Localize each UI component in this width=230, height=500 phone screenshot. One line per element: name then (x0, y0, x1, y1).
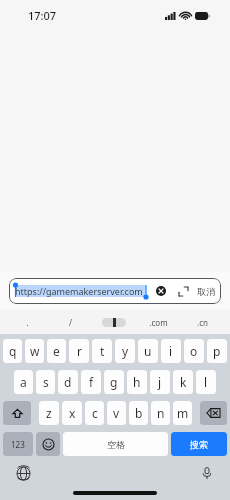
button[interactable]: p (207, 339, 227, 363)
button[interactable]: . (6, 310, 49, 334)
staticText: i (169, 343, 173, 359)
staticText: m (177, 405, 189, 421)
staticText: 空格 (107, 439, 125, 450)
staticText: u (144, 343, 152, 359)
button[interactable]: b (129, 401, 148, 425)
button[interactable]: r (69, 339, 89, 363)
button[interactable]: t (92, 339, 112, 363)
button[interactable]: m (173, 401, 192, 425)
staticText: d (64, 374, 72, 390)
staticText: n (157, 405, 165, 421)
staticText: y (122, 343, 129, 359)
staticText: q (9, 343, 17, 359)
staticText: .com (149, 317, 168, 328)
staticText: h (133, 374, 141, 390)
button[interactable]: k (173, 370, 193, 394)
staticText: f (89, 374, 94, 390)
staticText: 搜索 (190, 439, 208, 450)
staticText: g (110, 374, 118, 390)
staticText: a (20, 374, 27, 390)
button[interactable]: .com (136, 310, 180, 334)
button[interactable]: u (138, 339, 158, 363)
staticText: t (100, 343, 105, 359)
button[interactable]: Shift (3, 401, 31, 425)
staticText: c (92, 405, 98, 421)
staticText: https://gamemakerserver.com (15, 285, 143, 297)
button[interactable]: 123 (3, 432, 33, 456)
staticText: 17:07 (28, 8, 57, 23)
button[interactable]: 空格 (63, 432, 168, 456)
staticText: j (158, 374, 162, 390)
staticText: 取消 (197, 286, 215, 297)
button[interactable]: w (25, 339, 44, 363)
staticText: o (190, 343, 198, 359)
staticText: .cn (197, 317, 208, 328)
staticText: k (180, 374, 187, 390)
button[interactable]: Clear (153, 283, 169, 299)
button[interactable]: Expand (176, 284, 190, 298)
button[interactable]: Emoji (36, 432, 60, 456)
button[interactable]: v (107, 401, 126, 425)
button[interactable]: z (39, 401, 59, 425)
staticText: s (43, 374, 49, 390)
staticText: . (26, 317, 29, 328)
button[interactable]: Cursor control (92, 310, 136, 334)
button[interactable]: g (104, 370, 124, 394)
button[interactable]: a (14, 370, 33, 394)
button[interactable]: o (184, 339, 204, 363)
staticText: l (204, 374, 208, 390)
button[interactable]: e (47, 339, 66, 363)
button[interactable]: l (196, 370, 216, 394)
button[interactable]: n (151, 401, 170, 425)
staticText: z (46, 405, 52, 421)
button[interactable]: q (3, 339, 22, 363)
staticText: b (135, 405, 143, 421)
button[interactable]: y (115, 339, 135, 363)
button[interactable]: 搜索 (171, 432, 227, 456)
staticText: 123 (11, 439, 25, 450)
button[interactable]: 取消 (197, 286, 215, 297)
button[interactable]: https://gamemakerserver.com (9, 278, 221, 304)
staticText: x (69, 405, 76, 421)
button[interactable]: s (36, 370, 55, 394)
button[interactable]: c (85, 401, 104, 425)
button[interactable]: / (49, 310, 92, 334)
staticText: w (30, 343, 40, 359)
staticText: p (213, 343, 221, 359)
button[interactable]: i (161, 339, 181, 363)
staticText: r (77, 343, 82, 359)
button[interactable]: x (62, 401, 82, 425)
button[interactable]: h (127, 370, 147, 394)
button[interactable]: Backspace (200, 401, 227, 425)
button[interactable]: .cn (180, 310, 224, 334)
staticText: v (113, 405, 120, 421)
button[interactable]: Change keyboard language (14, 464, 32, 482)
staticText: / (69, 317, 72, 328)
button[interactable]: d (58, 370, 78, 394)
staticText: e (53, 343, 60, 359)
button[interactable]: j (150, 370, 170, 394)
button[interactable]: Voice input (198, 464, 216, 482)
button[interactable]: f (81, 370, 101, 394)
